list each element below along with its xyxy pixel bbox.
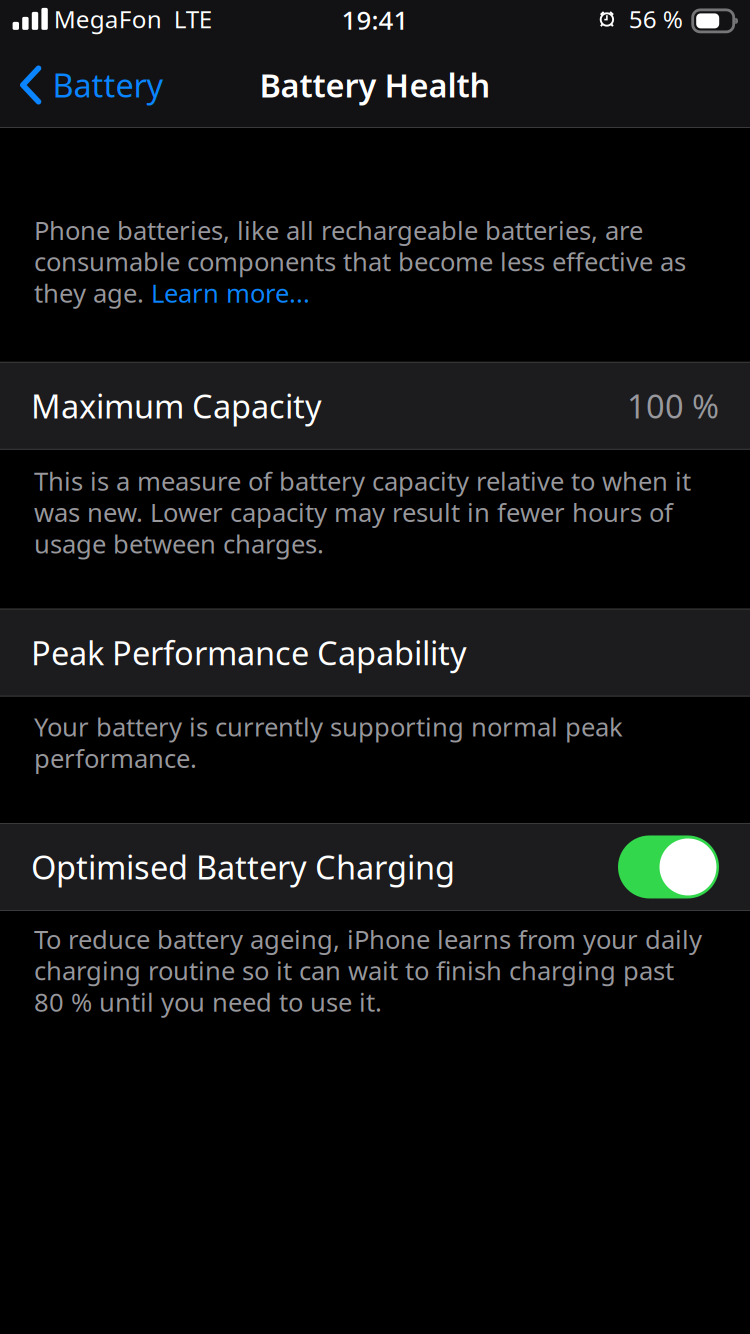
staticText: This is a measure of battery capacity re… — [34, 464, 691, 561]
staticText: To reduce battery ageing, iPhone learns … — [34, 922, 702, 1019]
button[interactable]: Battery — [0, 54, 163, 122]
staticText: 56 % — [629, 3, 683, 35]
staticText: 100 % — [627, 384, 719, 427]
staticText: Battery Health — [259, 63, 490, 107]
staticText: Phone batteries, like all rechargeable b… — [34, 213, 686, 310]
staticText: Optimised Battery Charging — [31, 845, 455, 889]
staticText: Battery — [52, 63, 163, 107]
staticText: Maximum Capacity — [31, 384, 322, 427]
staticText: Peak Performance Capability — [31, 631, 467, 674]
staticText: Your battery is currently supporting nor… — [34, 710, 623, 775]
staticText: 19:41 — [341, 3, 408, 37]
staticText: LTE — [174, 3, 212, 35]
button[interactable]: Optimised Battery Charging — [0, 823, 750, 911]
staticText: MegaFon — [54, 3, 162, 35]
